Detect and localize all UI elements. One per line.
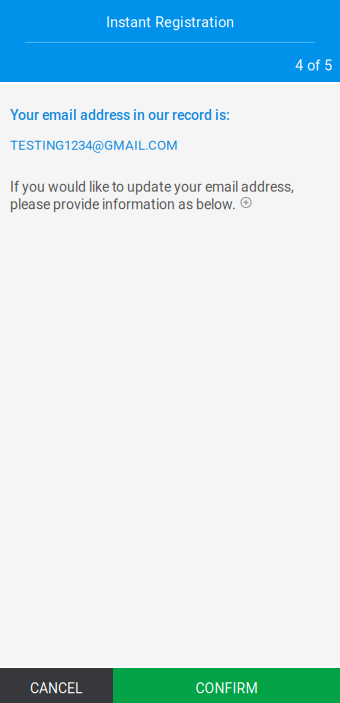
staticText: CANCEL	[30, 680, 83, 697]
staticText: please provide information as below.	[10, 196, 236, 213]
staticText: TESTING1234@GMAIL.COM	[10, 137, 178, 153]
staticText: CONFIRM	[195, 680, 257, 697]
staticText: 4 of 5	[295, 57, 332, 74]
staticText: If you would like to update your email a…	[10, 179, 294, 195]
staticText: Your email address in our record is:	[10, 107, 230, 123]
button[interactable]: CONFIRM	[113, 668, 340, 703]
button[interactable]: CANCEL	[0, 668, 113, 703]
staticText: Instant Registration	[106, 14, 234, 31]
